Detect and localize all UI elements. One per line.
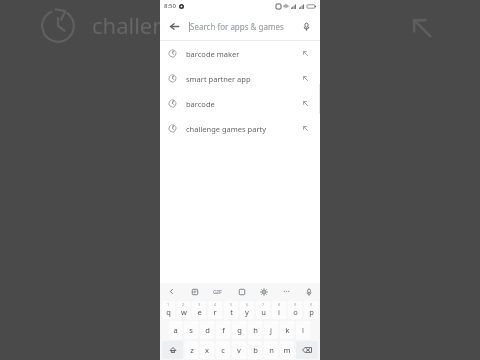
button[interactable]: 5 bbox=[224, 301, 238, 319]
staticText: p bbox=[309, 307, 314, 317]
staticText: 9 bbox=[294, 302, 297, 307]
button[interactable]: challenge games party bbox=[160, 116, 320, 141]
button[interactable]: h bbox=[248, 321, 262, 339]
button[interactable]: barcode bbox=[160, 91, 320, 116]
button[interactable]: 1 bbox=[162, 301, 175, 319]
staticText: r bbox=[213, 307, 217, 317]
staticText: d bbox=[205, 325, 210, 335]
staticText: o bbox=[293, 307, 298, 317]
button[interactable]: Settings bbox=[257, 285, 270, 298]
button[interactable]: Insert barcode maker bbox=[299, 47, 312, 60]
staticText: q bbox=[166, 307, 171, 317]
button[interactable]: m bbox=[280, 341, 294, 359]
staticText: challenge bbox=[92, 10, 192, 40]
button[interactable]: 2 bbox=[177, 301, 190, 319]
staticText: barcode maker bbox=[186, 49, 240, 59]
staticText: f bbox=[222, 325, 225, 335]
button[interactable]: x bbox=[200, 341, 214, 359]
button[interactable]: z bbox=[185, 341, 198, 359]
button[interactable]: Voice input bbox=[302, 285, 315, 298]
staticText: h bbox=[253, 325, 258, 335]
button[interactable]: f bbox=[216, 321, 230, 339]
staticText: smart partner app bbox=[186, 74, 251, 84]
button[interactable]: Collapse toolbar bbox=[165, 285, 178, 298]
staticText: c bbox=[221, 345, 225, 355]
button[interactable]: GIF bbox=[210, 285, 225, 298]
button[interactable]: g bbox=[232, 321, 246, 339]
staticText: v bbox=[237, 345, 241, 355]
staticText: u bbox=[261, 307, 266, 317]
staticText: t bbox=[230, 307, 233, 317]
button[interactable]: v bbox=[232, 341, 246, 359]
button[interactable]: Shift bbox=[162, 341, 183, 359]
button[interactable]: b bbox=[248, 341, 262, 359]
button[interactable]: Insert challenge games party bbox=[299, 122, 312, 135]
staticText: g bbox=[237, 325, 242, 335]
staticText: m bbox=[283, 345, 291, 355]
staticText: 7 bbox=[262, 302, 265, 307]
button[interactable]: Translate bbox=[235, 285, 248, 298]
staticText: 2 bbox=[182, 302, 185, 307]
staticText: z bbox=[190, 345, 194, 355]
staticText: barcode bbox=[186, 99, 215, 109]
staticText: 4 bbox=[214, 302, 217, 307]
staticText: k bbox=[285, 325, 290, 335]
button[interactable]: s bbox=[184, 321, 198, 339]
button[interactable]: Insert barcode bbox=[299, 97, 312, 110]
button[interactable]: 6 bbox=[240, 301, 254, 319]
button[interactable]: l bbox=[296, 321, 310, 339]
staticText: b bbox=[253, 345, 258, 355]
button[interactable]: Backspace bbox=[296, 341, 318, 359]
button[interactable]: k bbox=[280, 321, 294, 339]
button[interactable]: Back bbox=[166, 18, 182, 34]
button[interactable]: a bbox=[169, 321, 182, 339]
staticText: x bbox=[205, 345, 209, 355]
staticText: e bbox=[197, 307, 202, 317]
button[interactable]: n bbox=[264, 341, 278, 359]
button[interactable]: Insert smart partner app bbox=[299, 72, 312, 85]
button[interactable]: smart partner app bbox=[160, 66, 320, 91]
staticText: Search for apps & games bbox=[190, 21, 284, 32]
staticText: j bbox=[270, 325, 272, 335]
staticText: y bbox=[245, 307, 249, 317]
button[interactable]: 8 bbox=[272, 301, 286, 319]
button[interactable]: d bbox=[200, 321, 214, 339]
button[interactable]: 3 bbox=[192, 301, 206, 319]
button[interactable]: j bbox=[264, 321, 278, 339]
staticText: 8 bbox=[278, 302, 281, 307]
button[interactable]: Clipboard bbox=[188, 285, 201, 298]
staticText: l bbox=[302, 325, 304, 335]
button[interactable]: 0 bbox=[304, 301, 318, 319]
button[interactable]: More options bbox=[280, 285, 293, 298]
button[interactable]: barcode maker bbox=[160, 41, 320, 66]
staticText: w bbox=[181, 307, 187, 317]
staticText: 8:50 bbox=[164, 2, 176, 10]
staticText: 0 bbox=[310, 302, 313, 307]
staticText: GIF bbox=[213, 288, 222, 295]
staticText: 6 bbox=[246, 302, 249, 307]
staticText: n bbox=[269, 345, 274, 355]
staticText: i bbox=[278, 307, 280, 317]
staticText: 3 bbox=[198, 302, 201, 307]
button[interactable]: c bbox=[216, 341, 230, 359]
button[interactable]: 7 bbox=[256, 301, 270, 319]
button[interactable]: 4 bbox=[208, 301, 222, 319]
staticText: 1 bbox=[167, 302, 170, 307]
staticText: 5 bbox=[230, 302, 233, 307]
staticText: s bbox=[189, 325, 193, 335]
staticText: a bbox=[173, 325, 178, 335]
button[interactable]: Voice search bbox=[298, 18, 314, 34]
button[interactable]: 9 bbox=[288, 301, 302, 319]
staticText: challenge games party bbox=[186, 124, 267, 134]
